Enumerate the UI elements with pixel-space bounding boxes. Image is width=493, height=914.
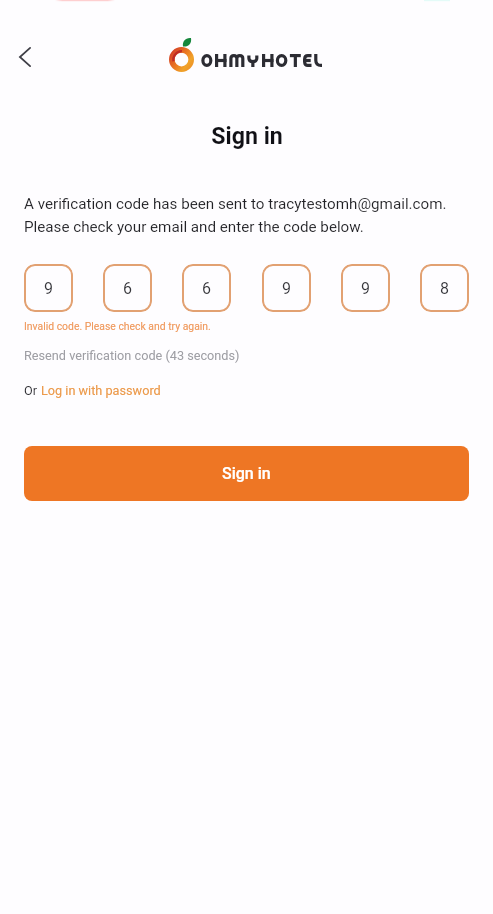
staticText: Invalid code. Please check and try again… (24, 320, 211, 332)
button[interactable]: 8 (420, 264, 469, 312)
button[interactable]: Log in with password (41, 383, 161, 398)
staticText: A verification code has been sent to tra… (24, 195, 469, 235)
button[interactable]: Resend verification code (43 seconds) (24, 348, 240, 363)
staticText: 6 (123, 279, 132, 298)
staticText: Sign in (211, 122, 283, 149)
button[interactable]: Back (5, 37, 45, 77)
button[interactable]: 9 (341, 264, 390, 312)
button[interactable]: 9 (24, 264, 73, 312)
staticText: 8 (440, 279, 449, 298)
button[interactable]: 6 (103, 264, 152, 312)
button[interactable]: 9 (262, 264, 311, 312)
staticText: Sign in (222, 464, 271, 483)
button[interactable]: Sign in (24, 446, 469, 501)
staticText: 9 (361, 279, 370, 298)
staticText: 9 (282, 279, 291, 298)
staticText: 9 (44, 279, 53, 298)
staticText: Or (24, 383, 41, 398)
staticText: 6 (202, 279, 211, 298)
button[interactable]: 6 (182, 264, 231, 312)
